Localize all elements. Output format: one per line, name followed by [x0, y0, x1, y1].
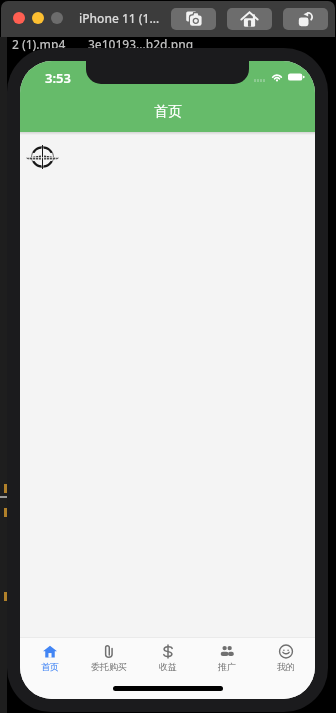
- staticText: 委托购买: [91, 661, 127, 672]
- staticText: 首页: [41, 661, 59, 672]
- staticText: 收益: [159, 661, 177, 672]
- button[interactable]: 我的: [256, 645, 315, 672]
- button[interactable]: Rotate device: [283, 8, 328, 30]
- button[interactable]: Home button: [227, 8, 272, 30]
- button[interactable]: Minimize window: [32, 12, 44, 24]
- button[interactable]: Close window: [13, 12, 25, 24]
- button[interactable]: Zoom window: [51, 12, 63, 24]
- button[interactable]: Take screenshot: [171, 8, 216, 30]
- button[interactable]: 委托购买: [79, 645, 138, 672]
- staticText: 2 (1).mp4: [12, 36, 66, 52]
- staticText: iPhone 11 (1…: [79, 10, 160, 26]
- button[interactable]: 推广: [197, 645, 256, 672]
- staticText: 首页: [154, 103, 182, 121]
- staticText: 3:53: [45, 69, 71, 87]
- staticText: 我的: [277, 661, 295, 672]
- button[interactable]: 首页: [20, 645, 79, 672]
- staticText: 推广: [218, 661, 236, 672]
- button[interactable]: 收益: [138, 645, 197, 672]
- staticText: 3e10193…b2d.png: [88, 36, 194, 52]
